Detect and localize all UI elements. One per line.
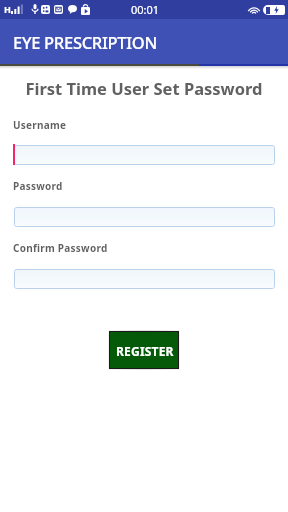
staticText: Username <box>13 118 67 132</box>
button[interactable]: REGISTER <box>110 332 178 368</box>
button[interactable]: Confirm Password <box>14 269 275 289</box>
staticText: EYE PRESCRIPTION <box>13 31 157 53</box>
staticText: Confirm Password <box>13 241 108 255</box>
staticText: Password <box>13 179 63 193</box>
button[interactable]: Username <box>14 145 275 165</box>
staticText: H <box>4 3 11 15</box>
staticText: 00:01 <box>131 2 160 17</box>
button[interactable]: Password <box>14 207 275 227</box>
staticText: First Time User Set Password <box>0 77 288 99</box>
staticText: REGISTER <box>116 343 174 359</box>
